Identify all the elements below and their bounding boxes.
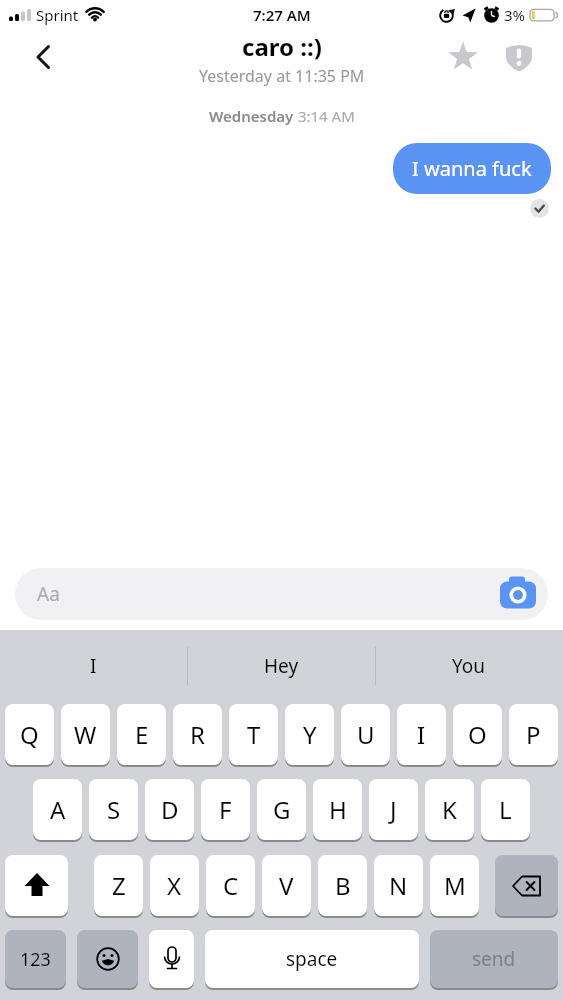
staticText: Y: [303, 718, 317, 751]
staticText: M: [444, 869, 466, 902]
button[interactable]: W: [61, 704, 110, 765]
staticText: W: [74, 718, 97, 751]
button[interactable]: E: [117, 704, 166, 765]
staticText: K: [442, 793, 457, 826]
staticText: Aa: [37, 581, 60, 607]
staticText: V: [279, 869, 294, 902]
button[interactable]: M: [430, 855, 479, 916]
button[interactable]: H: [313, 779, 362, 840]
staticText: I: [90, 653, 97, 679]
button[interactable]: N: [374, 855, 423, 916]
button[interactable]: B: [318, 855, 367, 916]
button[interactable]: C: [206, 855, 255, 916]
staticText: Q: [20, 718, 39, 751]
staticText: R: [190, 718, 205, 751]
staticText: J: [390, 793, 397, 826]
staticText: P: [526, 718, 541, 751]
button[interactable]: 123: [5, 930, 66, 988]
button[interactable]: R: [173, 704, 222, 765]
button[interactable]: K: [425, 779, 474, 840]
staticText: U: [357, 718, 375, 751]
button[interactable]: space: [205, 930, 419, 988]
button[interactable]: X: [150, 855, 199, 916]
button[interactable]: I: [0, 630, 187, 702]
staticText: C: [223, 869, 239, 902]
staticText: I wanna fuck: [412, 155, 532, 182]
staticText: 7:27 AM: [253, 5, 311, 25]
staticText: You: [452, 653, 486, 679]
button[interactable]: Hey: [187, 630, 375, 702]
staticText: space: [286, 946, 338, 972]
button[interactable]: O: [453, 704, 502, 765]
staticText: X: [167, 869, 182, 902]
staticText: T: [247, 718, 261, 751]
button[interactable]: A: [33, 779, 82, 840]
staticText: O: [468, 718, 487, 751]
staticText: S: [107, 793, 121, 826]
button[interactable]: [149, 930, 194, 988]
staticText: N: [389, 869, 408, 902]
staticText: 3:14 AM: [294, 106, 355, 126]
staticText: send: [472, 946, 516, 972]
staticText: B: [335, 869, 351, 902]
staticText: I: [417, 718, 426, 751]
button[interactable]: [496, 572, 540, 616]
button[interactable]: [495, 855, 558, 916]
button[interactable]: S: [89, 779, 138, 840]
button[interactable]: P: [509, 704, 558, 765]
staticText: Wednesday: [209, 106, 294, 126]
button[interactable]: [77, 930, 138, 988]
button[interactable]: Y: [285, 704, 334, 765]
button[interactable]: Aa: [15, 568, 548, 620]
button[interactable]: I: [397, 704, 446, 765]
staticText: 3%: [504, 5, 526, 25]
button[interactable]: J: [369, 779, 418, 840]
staticText: caro ::): [242, 30, 322, 63]
button[interactable]: Z: [94, 855, 143, 916]
staticText: Hey: [264, 653, 299, 679]
button[interactable]: F: [201, 779, 250, 840]
staticText: G: [273, 793, 291, 826]
button[interactable]: L: [481, 779, 530, 840]
button[interactable]: [28, 41, 60, 73]
staticText: H: [329, 793, 347, 826]
staticText: F: [219, 793, 232, 826]
button[interactable]: send: [430, 930, 558, 988]
staticText: A: [50, 793, 66, 826]
button[interactable]: You: [375, 630, 563, 702]
staticText: Z: [112, 869, 126, 902]
staticText: L: [499, 793, 512, 826]
button[interactable]: D: [145, 779, 194, 840]
staticText: Sprint: [36, 5, 79, 25]
staticText: 123: [20, 947, 51, 972]
staticText: D: [161, 793, 179, 826]
staticText: E: [135, 718, 149, 751]
button[interactable]: T: [229, 704, 278, 765]
button[interactable]: I wanna fuck: [393, 143, 551, 194]
button[interactable]: V: [262, 855, 311, 916]
staticText: Yesterday at 11:35 PM: [199, 65, 365, 87]
button[interactable]: G: [257, 779, 306, 840]
button[interactable]: [446, 40, 480, 74]
button[interactable]: U: [341, 704, 390, 765]
button[interactable]: [502, 40, 536, 74]
button[interactable]: Q: [5, 704, 54, 765]
button[interactable]: [5, 855, 68, 916]
